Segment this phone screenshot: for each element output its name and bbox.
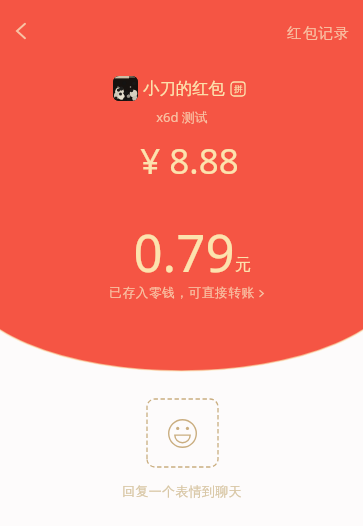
button[interactable]: 已存入零钱，可直接转账 [105,283,270,303]
staticText: 回复一个表情到聊天 [122,483,242,499]
staticText: x6d 测试 [156,108,208,126]
staticText: 小刀的红包 [143,78,225,99]
staticText: 已存入零钱，可直接转账 [109,285,255,301]
staticText: 拼 [234,84,243,95]
staticText: ¥ 8.88 [140,137,239,185]
staticText: 0.79 [133,217,235,286]
button[interactable]: Reply with a sticker [147,399,218,467]
button[interactable]: Back [1,11,41,51]
staticText: 元 [235,255,251,275]
button[interactable]: 红包记录 [281,20,356,46]
staticText: 红包记录 [287,24,350,42]
